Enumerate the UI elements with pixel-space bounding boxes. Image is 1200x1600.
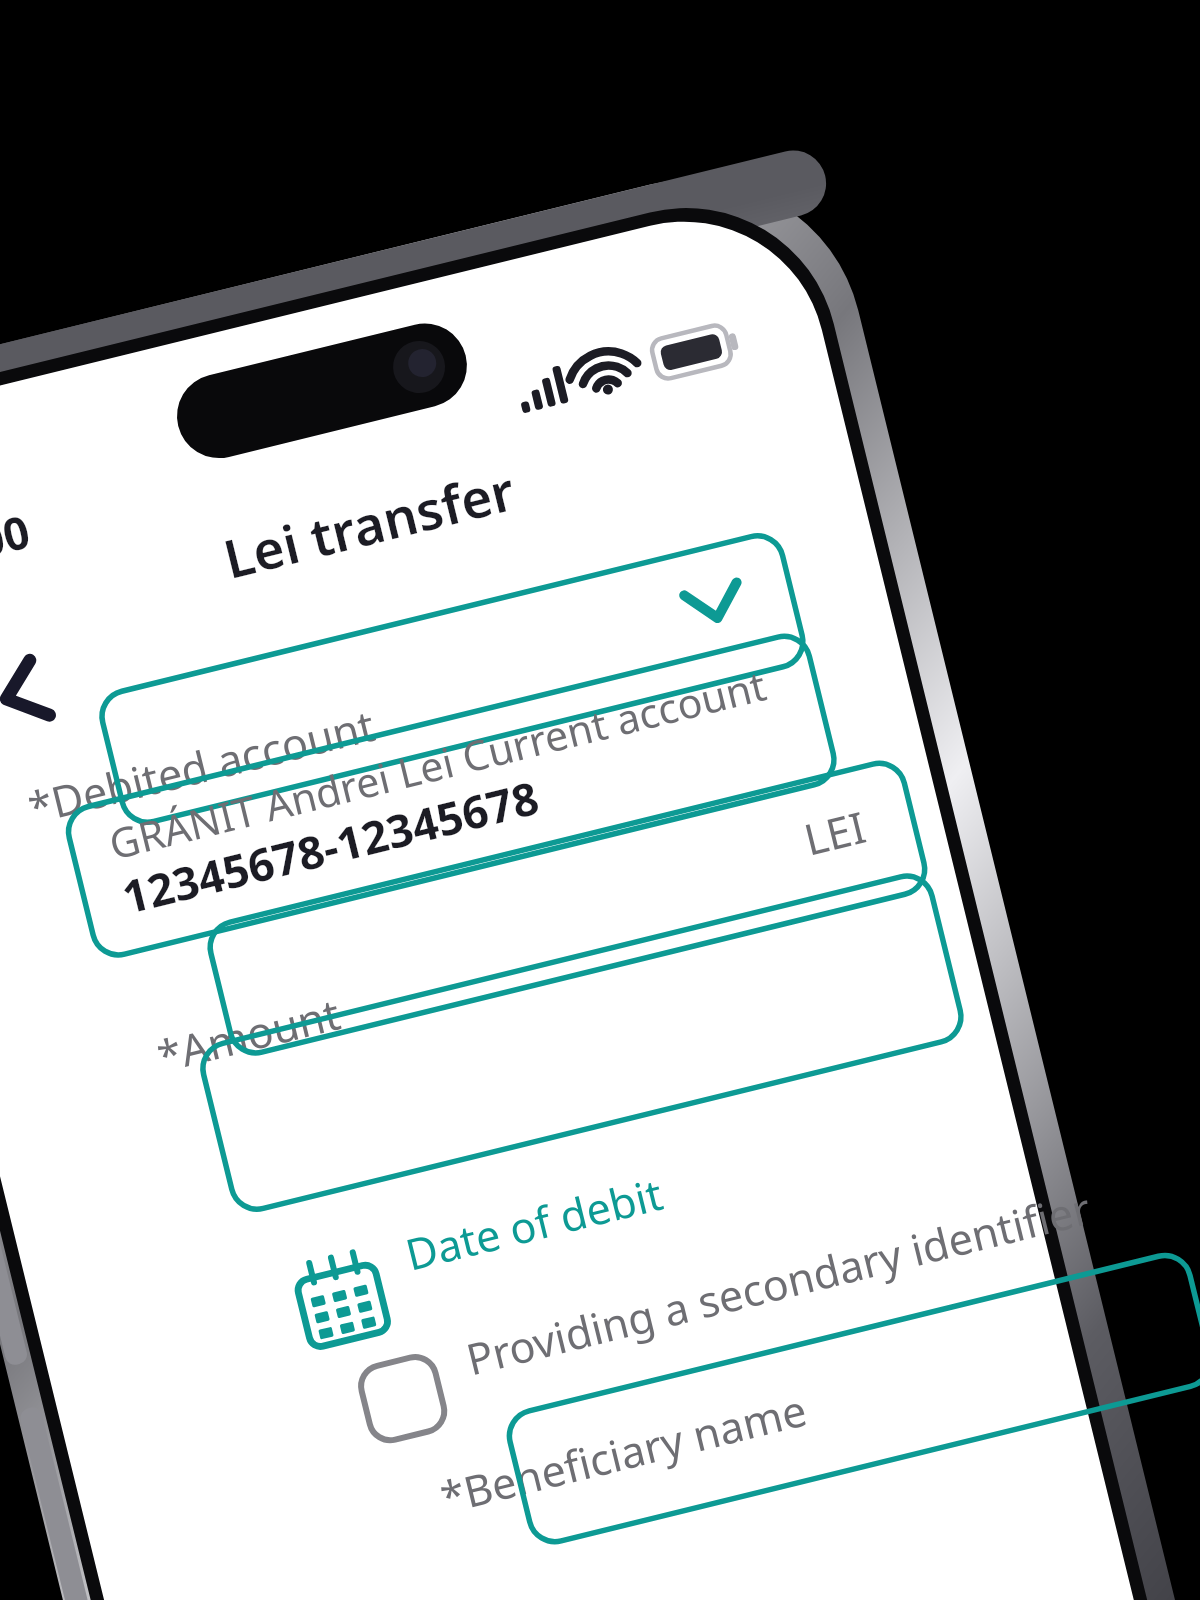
button[interactable] — [360, 770, 980, 900]
button[interactable] — [660, 1430, 1140, 1560]
button[interactable]: Back — [228, 690, 298, 750]
button[interactable] — [470, 1130, 1090, 1270]
button[interactable]: Date of debit — [580, 1300, 870, 1410]
